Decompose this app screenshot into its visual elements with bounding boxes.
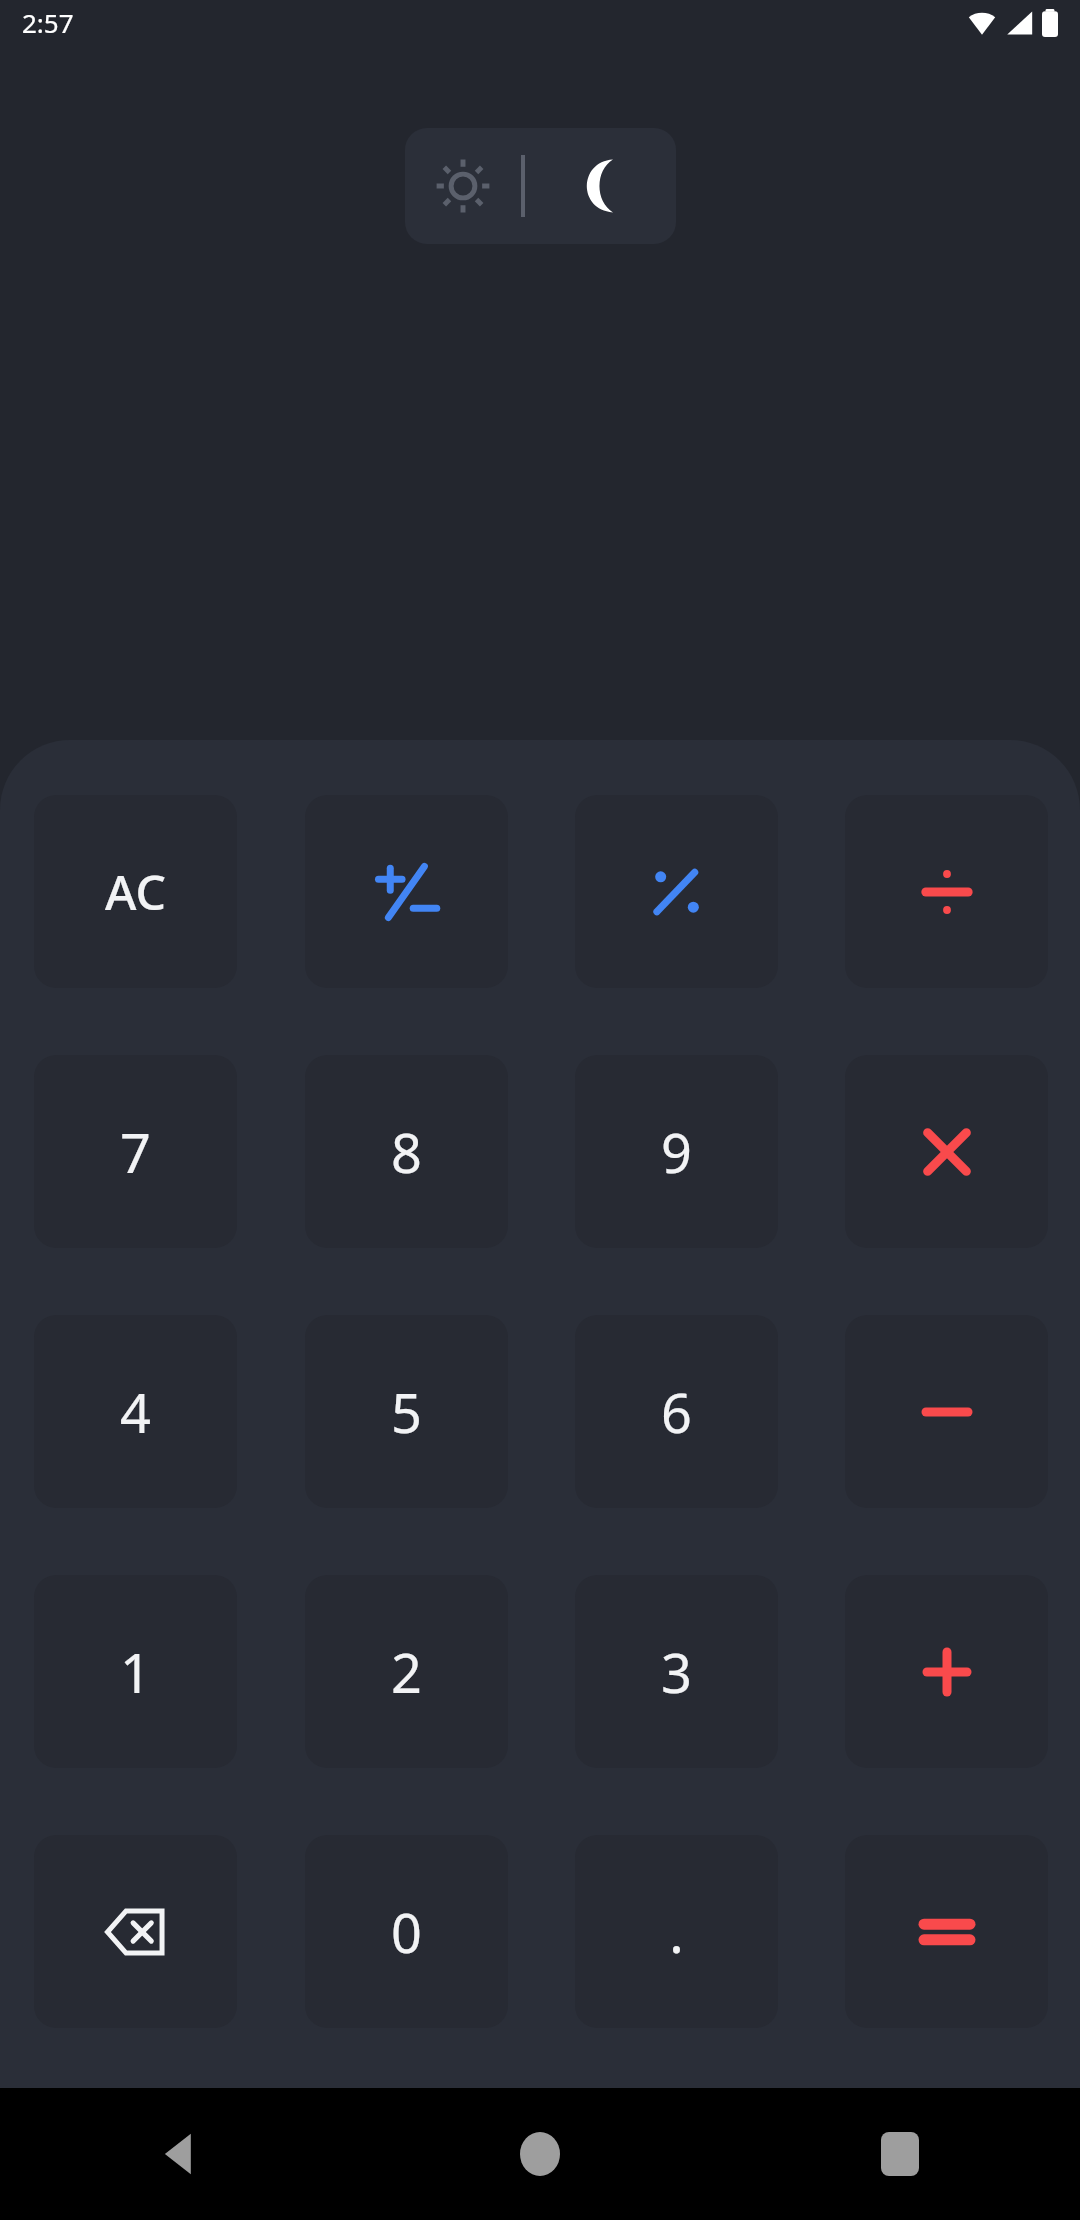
button[interactable]: Equals — [845, 1835, 1048, 2028]
button[interactable]: Add — [845, 1575, 1048, 1768]
button[interactable]: 1 — [34, 1575, 237, 1768]
button[interactable]: Multiply — [845, 1055, 1048, 1248]
staticText: 2 — [391, 1635, 422, 1709]
staticText: 8 — [391, 1115, 422, 1189]
button[interactable]: 2 — [305, 1575, 508, 1768]
staticText: . — [669, 1895, 684, 1969]
staticText: 3 — [661, 1635, 692, 1709]
staticText: AC — [105, 859, 166, 924]
button[interactable]: 8 — [305, 1055, 508, 1248]
button[interactable]: Divide — [845, 795, 1048, 988]
staticText: 2:57 — [22, 5, 74, 40]
staticText: 4 — [120, 1375, 151, 1449]
button[interactable]: Recent apps — [720, 2088, 1080, 2220]
button[interactable]: Backspace — [34, 1835, 237, 2028]
staticText: 6 — [661, 1375, 692, 1449]
button[interactable]: Subtract — [845, 1315, 1048, 1508]
button[interactable]: 3 — [575, 1575, 778, 1768]
staticText: 9 — [661, 1115, 692, 1189]
button[interactable]: Toggle sign — [305, 795, 508, 988]
staticText: 5 — [391, 1375, 422, 1449]
staticText: 0 — [391, 1895, 422, 1969]
button[interactable]: . — [575, 1835, 778, 2028]
button[interactable]: 6 — [575, 1315, 778, 1508]
staticText: 1 — [120, 1635, 151, 1709]
button[interactable]: Home — [360, 2088, 720, 2220]
button[interactable]: Back — [0, 2088, 360, 2220]
button[interactable]: Light theme — [405, 128, 521, 244]
button[interactable]: 5 — [305, 1315, 508, 1508]
button[interactable]: Percent — [575, 795, 778, 988]
button[interactable]: 0 — [305, 1835, 508, 2028]
button[interactable]: Dark theme — [525, 128, 676, 244]
button[interactable]: 7 — [34, 1055, 237, 1248]
button[interactable]: 9 — [575, 1055, 778, 1248]
button[interactable]: 4 — [34, 1315, 237, 1508]
button[interactable]: AC — [34, 795, 237, 988]
staticText: 7 — [120, 1115, 151, 1189]
